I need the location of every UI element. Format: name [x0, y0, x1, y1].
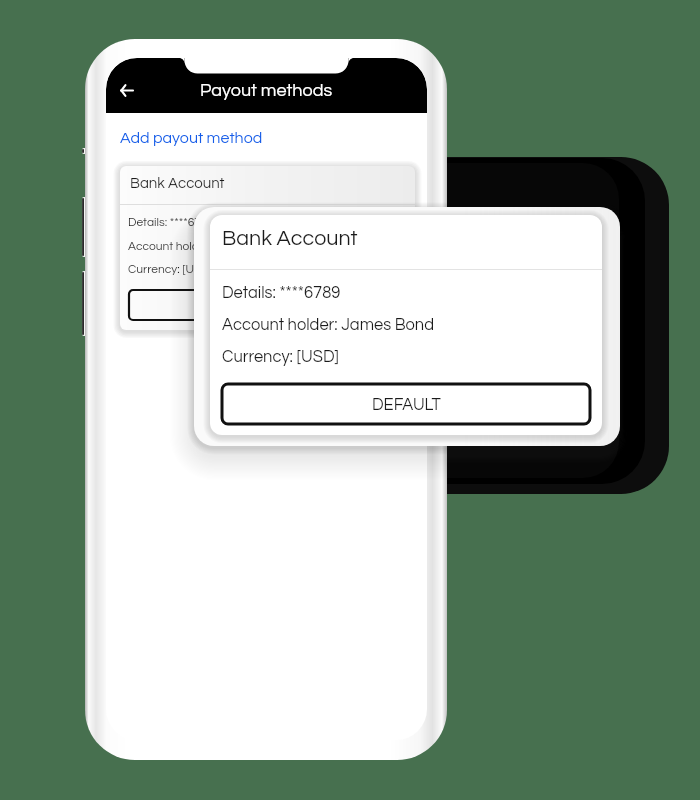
staticText: Account holder: James Bond — [128, 240, 283, 252]
staticText: Payout methods — [200, 81, 333, 100]
staticText: Account holder: James Bond — [222, 316, 435, 333]
staticText: Bank Account — [222, 227, 358, 249]
button[interactable]: Back — [108, 72, 144, 108]
staticText: Currency: [USD] — [128, 263, 213, 275]
button[interactable]: DEFAULT — [222, 384, 590, 424]
button[interactable]: Add payout method — [118, 128, 265, 148]
button[interactable]: Bank Account — [210, 215, 602, 435]
staticText: Currency: [USD] — [222, 348, 339, 365]
staticText: Bank Account — [130, 176, 225, 191]
button[interactable]: DEFAULT — [129, 290, 406, 320]
staticText: DEFAULT — [372, 396, 441, 413]
button[interactable]: Bank Account — [120, 166, 415, 330]
staticText: Details: ****6789 — [222, 284, 341, 301]
staticText: Details: ****6789 — [128, 216, 215, 228]
